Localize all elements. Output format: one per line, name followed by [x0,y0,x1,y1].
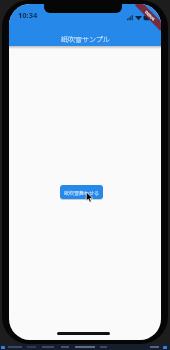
button[interactable]: 紙吹雪舞わせる [60,185,103,199]
staticText: 10:34 [18,10,38,20]
staticText: 紙吹雪舞わせる [64,189,100,196]
staticText: DEBUG [144,9,157,22]
staticText: 紙吹雪サンプル [61,34,110,44]
